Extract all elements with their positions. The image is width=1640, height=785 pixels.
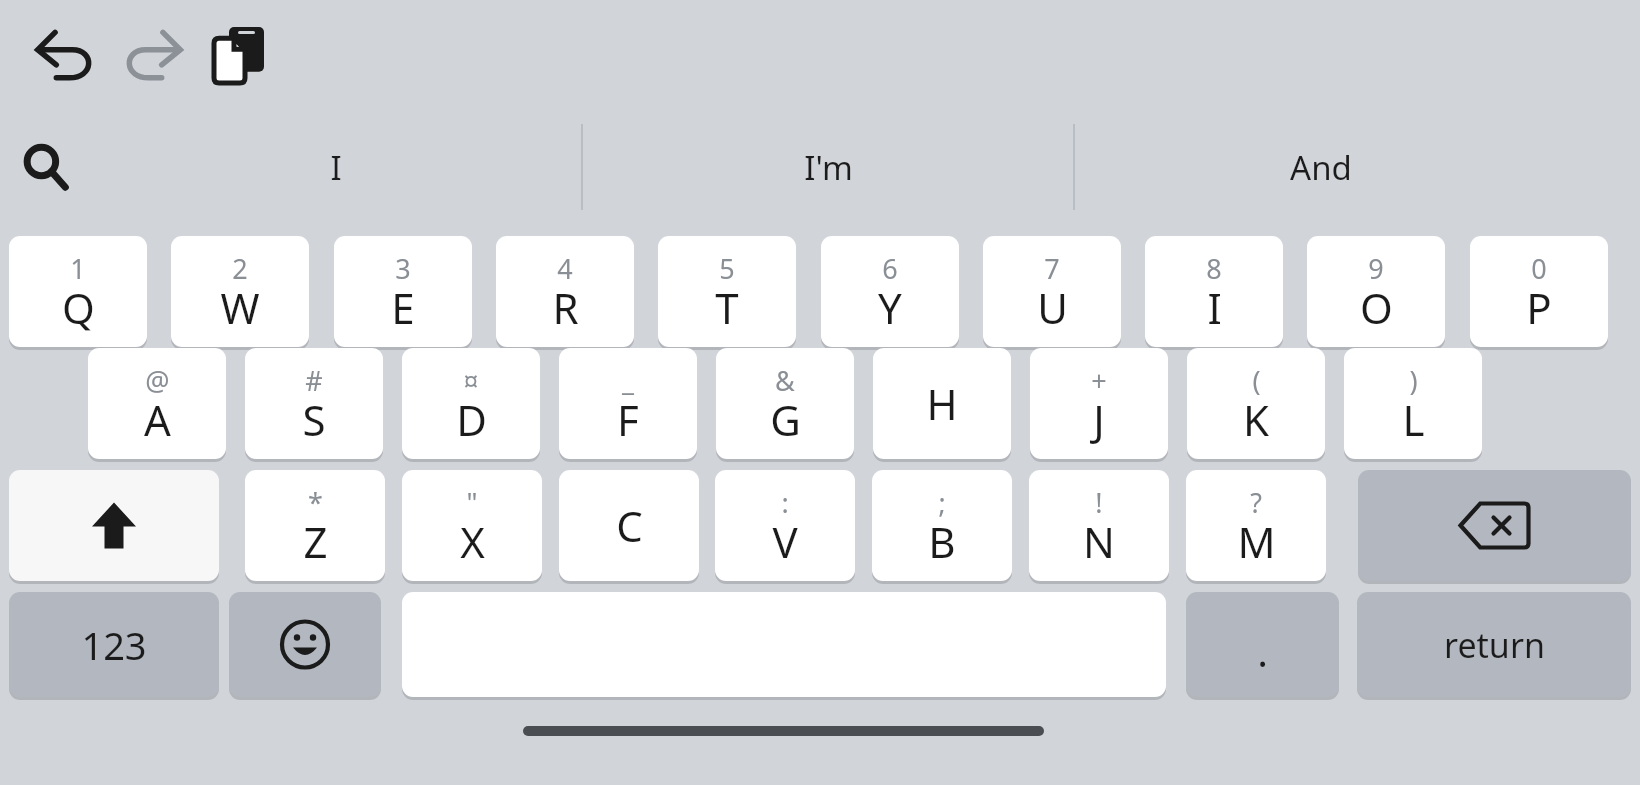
button[interactable]: And (1075, 128, 1567, 206)
button[interactable]: 7 (983, 236, 1121, 347)
button[interactable]: I'm (583, 128, 1073, 206)
staticText: I (1207, 279, 1222, 336)
button[interactable]: 4 (496, 236, 634, 347)
staticText: E (391, 279, 415, 336)
button[interactable]: : (715, 470, 855, 581)
staticText: T (715, 279, 739, 336)
staticText: X (460, 513, 485, 570)
button[interactable]: Undo (30, 22, 100, 86)
button[interactable]: I (90, 128, 582, 206)
staticText: 6 (882, 250, 898, 287)
button[interactable]: 1 (9, 236, 147, 347)
staticText: 4 (557, 250, 573, 287)
button[interactable]: 6 (821, 236, 959, 347)
staticText: : (781, 484, 789, 521)
button[interactable]: ? (1186, 470, 1326, 581)
button[interactable]: Redo (118, 22, 188, 86)
button[interactable]: Search (8, 128, 84, 206)
button[interactable]: . (1186, 592, 1339, 697)
staticText: ? (1250, 484, 1262, 521)
staticText: U (1037, 279, 1068, 336)
staticText: K (1243, 391, 1269, 448)
button[interactable]: @ (88, 348, 226, 459)
staticText: L (1402, 391, 1425, 448)
staticText: " (466, 484, 478, 521)
staticText: And (1290, 145, 1352, 190)
staticText: R (552, 279, 579, 336)
staticText: ! (1095, 484, 1103, 521)
button[interactable]: 2 (171, 236, 309, 347)
button[interactable]: & (716, 348, 854, 459)
staticText: V (772, 513, 798, 570)
button[interactable]: 8 (1145, 236, 1283, 347)
staticText: 0 (1531, 250, 1547, 287)
button[interactable]: # (245, 348, 383, 459)
staticText: 7 (1044, 250, 1060, 287)
staticText: 1 (70, 250, 86, 287)
staticText: _ (622, 362, 634, 399)
staticText: 5 (719, 250, 735, 287)
staticText: H (926, 375, 958, 432)
button[interactable]: Clipboard (205, 22, 273, 88)
staticText: ; (938, 484, 946, 521)
button[interactable]: C (559, 470, 699, 581)
staticText: * (308, 484, 323, 521)
staticText: @ (145, 362, 170, 399)
button[interactable]: ! (1029, 470, 1169, 581)
staticText: W (220, 279, 260, 336)
button[interactable]: " (402, 470, 542, 581)
button[interactable]: Emoji (229, 592, 381, 697)
staticText: 9 (1368, 250, 1384, 287)
staticText: + (1091, 362, 1107, 399)
button[interactable]: 5 (658, 236, 796, 347)
button[interactable]: ) (1344, 348, 1482, 459)
staticText: ) (1409, 362, 1418, 399)
button[interactable]: + (1030, 348, 1168, 459)
staticText: B (928, 513, 956, 570)
button[interactable]: 3 (334, 236, 472, 347)
staticText: S (302, 391, 326, 448)
staticText: 123 (81, 619, 147, 671)
staticText: F (617, 391, 639, 448)
staticText: D (456, 391, 487, 448)
staticText: P (1526, 279, 1552, 336)
button[interactable]: ¤ (402, 348, 540, 459)
staticText: 8 (1206, 250, 1222, 287)
staticText: # (305, 362, 323, 399)
staticText: Y (878, 279, 902, 336)
staticText: Q (62, 279, 95, 336)
button[interactable]: H (873, 348, 1011, 459)
button[interactable]: Backspace (1358, 470, 1631, 581)
staticText: C (616, 497, 643, 554)
staticText: Z (303, 513, 328, 570)
staticText: . (1257, 624, 1268, 678)
staticText: ( (1252, 362, 1261, 399)
button[interactable]: 0 (1470, 236, 1608, 347)
staticText: 2 (232, 250, 248, 287)
button[interactable]: ( (1187, 348, 1325, 459)
staticText: G (770, 391, 801, 448)
staticText: M (1237, 513, 1276, 570)
button[interactable]: _ (559, 348, 697, 459)
button[interactable]: ; (872, 470, 1012, 581)
staticText: & (775, 362, 795, 399)
staticText: I'm (804, 145, 853, 190)
button[interactable]: 123 (9, 592, 219, 697)
staticText: A (144, 391, 171, 448)
staticText: O (1360, 279, 1393, 336)
button[interactable]: 9 (1307, 236, 1445, 347)
button[interactable]: Shift (9, 470, 219, 581)
staticText: ¤ (463, 362, 479, 399)
staticText: N (1083, 513, 1115, 570)
button[interactable]: * (245, 470, 385, 581)
staticText: I (330, 145, 342, 190)
staticText: return (1444, 622, 1545, 668)
staticText: J (1093, 391, 1105, 448)
staticText: 3 (395, 250, 411, 287)
button[interactable]: return (1357, 592, 1631, 697)
